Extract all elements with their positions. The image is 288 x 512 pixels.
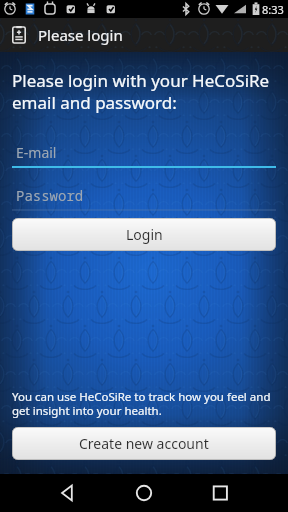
staticText: Please login <box>38 25 123 45</box>
button[interactable]: Create new account <box>12 427 276 460</box>
button[interactable]: E-mail <box>12 143 276 169</box>
staticText: E-mail <box>16 143 57 162</box>
button[interactable]: Login <box>12 218 276 251</box>
staticText: You can use HeCoSiRe to track how you fe… <box>12 389 276 418</box>
staticText: Password <box>16 186 84 205</box>
staticText: Please login with your HeCoSiRe email an… <box>12 69 276 114</box>
button[interactable]: Password <box>12 186 276 211</box>
staticText: 8:33 <box>262 2 284 17</box>
staticText: Create new account <box>79 434 209 453</box>
staticText: Login <box>126 225 163 244</box>
